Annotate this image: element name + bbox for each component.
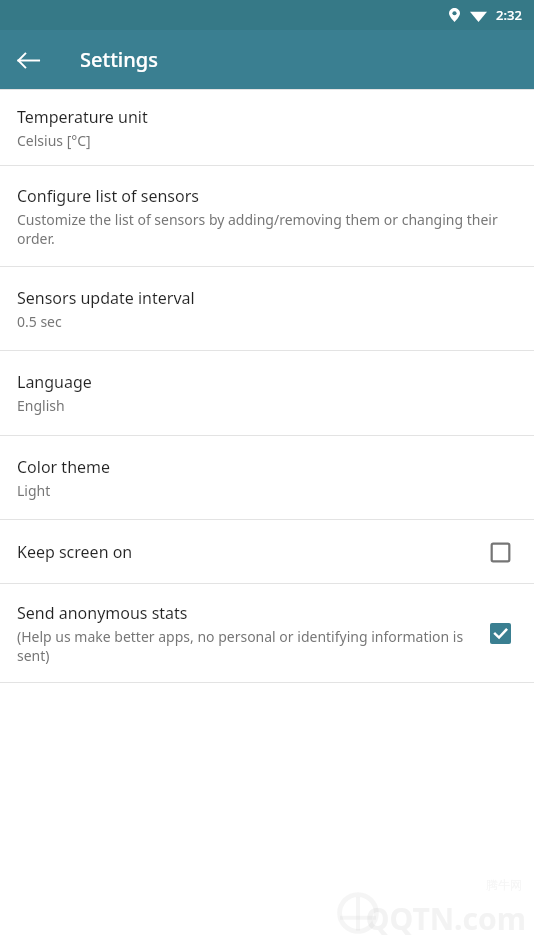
button[interactable]: Color theme: [0, 436, 534, 519]
staticText: Sensors update interval: [17, 287, 195, 309]
staticText: Configure list of sensors: [17, 185, 199, 207]
button[interactable]: Unchecked: Keep screen on: [480, 532, 520, 572]
staticText: 0.5 sec: [17, 312, 62, 331]
staticText: Customize the list of sensors by adding/…: [17, 210, 520, 248]
button[interactable]: Configure list of sensors: [0, 166, 534, 266]
staticText: English: [17, 396, 65, 415]
button[interactable]: Sensors update interval: [0, 267, 534, 350]
staticText: Color theme: [17, 456, 111, 478]
staticText: Settings: [80, 46, 158, 73]
staticText: Language: [17, 371, 92, 393]
staticText: Celsius [°C]: [17, 131, 91, 150]
button[interactable]: Send anonymous stats: [0, 584, 534, 682]
staticText: Temperature unit: [17, 106, 148, 128]
staticText: 2:32: [496, 6, 522, 24]
staticText: QQTN.com: [365, 898, 526, 939]
button[interactable]: Language: [0, 351, 534, 435]
staticText: Keep screen on: [17, 541, 133, 563]
staticText: (Help us make better apps, no personal o…: [17, 627, 468, 665]
button[interactable]: Keep screen on: [0, 520, 534, 583]
staticText: Light: [17, 481, 51, 500]
button[interactable]: Temperature unit: [0, 90, 534, 165]
button[interactable]: Checked: Send anonymous stats: [480, 613, 520, 653]
staticText: 腾牛网: [486, 877, 522, 892]
staticText: Send anonymous stats: [17, 602, 188, 624]
button[interactable]: Back: [0, 32, 56, 88]
